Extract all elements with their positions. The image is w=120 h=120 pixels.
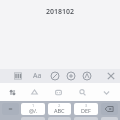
button[interactable]: Backspace: [101, 103, 118, 115]
button[interactable]: Hide keyboard: [100, 86, 113, 99]
button[interactable]: Symbols: [2, 103, 19, 115]
button[interactable]: Google Assistant: [6, 86, 19, 99]
staticText: @/.: [29, 107, 38, 114]
button[interactable]: 1: [21, 103, 45, 115]
button[interactable]: Rotate: [48, 69, 62, 83]
staticText: ABC: [54, 107, 65, 114]
button[interactable]: Aa: [30, 69, 44, 83]
staticText: 2018102: [46, 7, 75, 17]
button[interactable]: Stickers: [52, 86, 65, 99]
button[interactable]: Annotate: [80, 69, 94, 83]
button[interactable]: Shift: [28, 86, 41, 99]
button[interactable]: Insert table: [11, 69, 25, 83]
button[interactable]: Close: [104, 69, 118, 83]
staticText: 2: [58, 103, 61, 108]
staticText: DEF: [81, 107, 91, 114]
staticText: 1: [32, 103, 35, 108]
button[interactable]: Search: [76, 86, 89, 99]
staticText: Aa: [33, 71, 42, 81]
button[interactable]: Add: [64, 69, 78, 83]
button[interactable]: 3: [74, 103, 98, 115]
button[interactable]: 2: [48, 103, 71, 115]
staticText: 3: [85, 103, 88, 108]
